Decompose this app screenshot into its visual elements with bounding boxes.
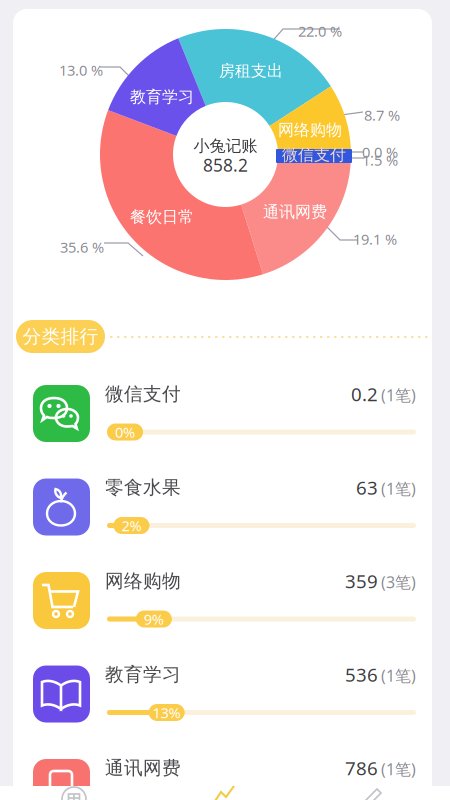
- staticText: 63: [356, 475, 378, 500]
- staticText: 858.2: [203, 153, 248, 176]
- button[interactable]: 教育学习: [13, 665, 432, 759]
- button[interactable]: 通讯网费: [13, 759, 432, 800]
- button[interactable]: 账本: [0, 786, 150, 800]
- staticText: 13%: [153, 703, 181, 722]
- staticText: (1笔): [381, 665, 416, 686]
- button[interactable]: 记账: [300, 786, 450, 800]
- staticText: 1.5 %: [362, 150, 398, 170]
- staticText: (1笔): [381, 758, 416, 780]
- staticText: 786: [345, 756, 378, 780]
- staticText: 359: [345, 569, 378, 593]
- staticText: 0.2: [351, 382, 378, 406]
- staticText: 微信支付: [282, 145, 346, 165]
- staticText: 9%: [144, 609, 164, 629]
- staticText: (1笔): [381, 384, 416, 406]
- staticText: 536: [345, 662, 378, 687]
- staticText: (1笔): [381, 478, 416, 499]
- button[interactable]: 统计: [150, 786, 300, 800]
- staticText: 35.6 %: [60, 237, 104, 257]
- staticText: 房租支出: [219, 61, 283, 81]
- staticText: 22.0 %: [298, 21, 342, 41]
- staticText: 通讯网费: [105, 756, 181, 779]
- staticText: 2%: [121, 516, 141, 535]
- staticText: 0%: [115, 422, 135, 442]
- button[interactable]: 微信支付: [13, 385, 432, 478]
- staticText: 网络购物: [105, 569, 181, 592]
- staticText: (3笔): [381, 571, 416, 593]
- staticText: 13.0 %: [59, 60, 103, 80]
- staticText: 餐饮日常: [130, 207, 194, 227]
- button[interactable]: 网络购物: [13, 572, 432, 665]
- staticText: 0.0 %: [362, 142, 398, 162]
- staticText: 教育学习: [105, 663, 181, 686]
- staticText: 小兔记账: [193, 136, 257, 156]
- staticText: 分类排行: [22, 325, 98, 348]
- staticText: 网络购物: [278, 120, 342, 140]
- staticText: 19.1 %: [353, 229, 397, 249]
- staticText: 教育学习: [130, 87, 194, 107]
- button[interactable]: 零食水果: [13, 478, 432, 572]
- staticText: 8.7 %: [364, 105, 400, 125]
- staticText: 微信支付: [105, 382, 181, 405]
- staticText: 零食水果: [105, 476, 181, 499]
- staticText: 通讯网费: [263, 202, 327, 222]
